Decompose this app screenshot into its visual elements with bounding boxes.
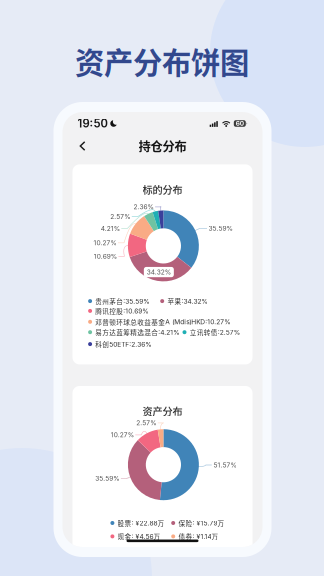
staticText: 立讯转债:2.57% (190, 327, 240, 337)
button[interactable]: 返回 (71, 136, 93, 156)
staticText: 51.57% (213, 461, 236, 469)
staticText: 2.57% (136, 419, 156, 427)
staticText: 10.27% (111, 431, 134, 439)
staticText: 19:50 (77, 117, 107, 130)
staticText: 贵州茅台:35.59% (95, 296, 149, 306)
staticText: 35.59% (209, 224, 233, 232)
staticText: 资产分布饼图 (75, 40, 249, 82)
staticText: 10.69% (94, 252, 117, 260)
staticText: 保险: ¥15.79万 (178, 518, 224, 528)
staticText: 10.27% (93, 239, 116, 247)
staticText: 4.21% (101, 224, 120, 232)
staticText: 易方达蓝筹精选混合:4.21% (95, 327, 179, 337)
staticText: 资产分布 (142, 404, 182, 418)
staticText: 债券: ¥1.14万 (178, 532, 218, 541)
staticText: 苹果:34.32% (167, 296, 207, 306)
staticText: 34.32% (147, 268, 171, 276)
staticText: 腾讯控股:10.69% (95, 306, 148, 316)
staticText: 2.36% (133, 203, 153, 211)
staticText: 科创50ETF:2.36% (95, 339, 151, 349)
staticText: 邓普顿环球总收益基金A (Mdis)HKD:10.27% (95, 317, 230, 327)
staticText: 60 (236, 120, 244, 127)
staticText: 现金: ¥4.56万 (118, 532, 161, 541)
staticText: 35.59% (95, 474, 119, 482)
staticText: 持仓分布 (138, 137, 186, 155)
staticText: 2.57% (110, 213, 130, 220)
staticText: 标的分布 (142, 182, 182, 197)
staticText: 股票: ¥22.88万 (118, 518, 165, 528)
